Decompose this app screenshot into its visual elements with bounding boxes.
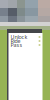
staticText: Unlock (10, 33, 27, 41)
staticText: Pass (10, 41, 22, 49)
staticText: Ride (10, 37, 20, 45)
